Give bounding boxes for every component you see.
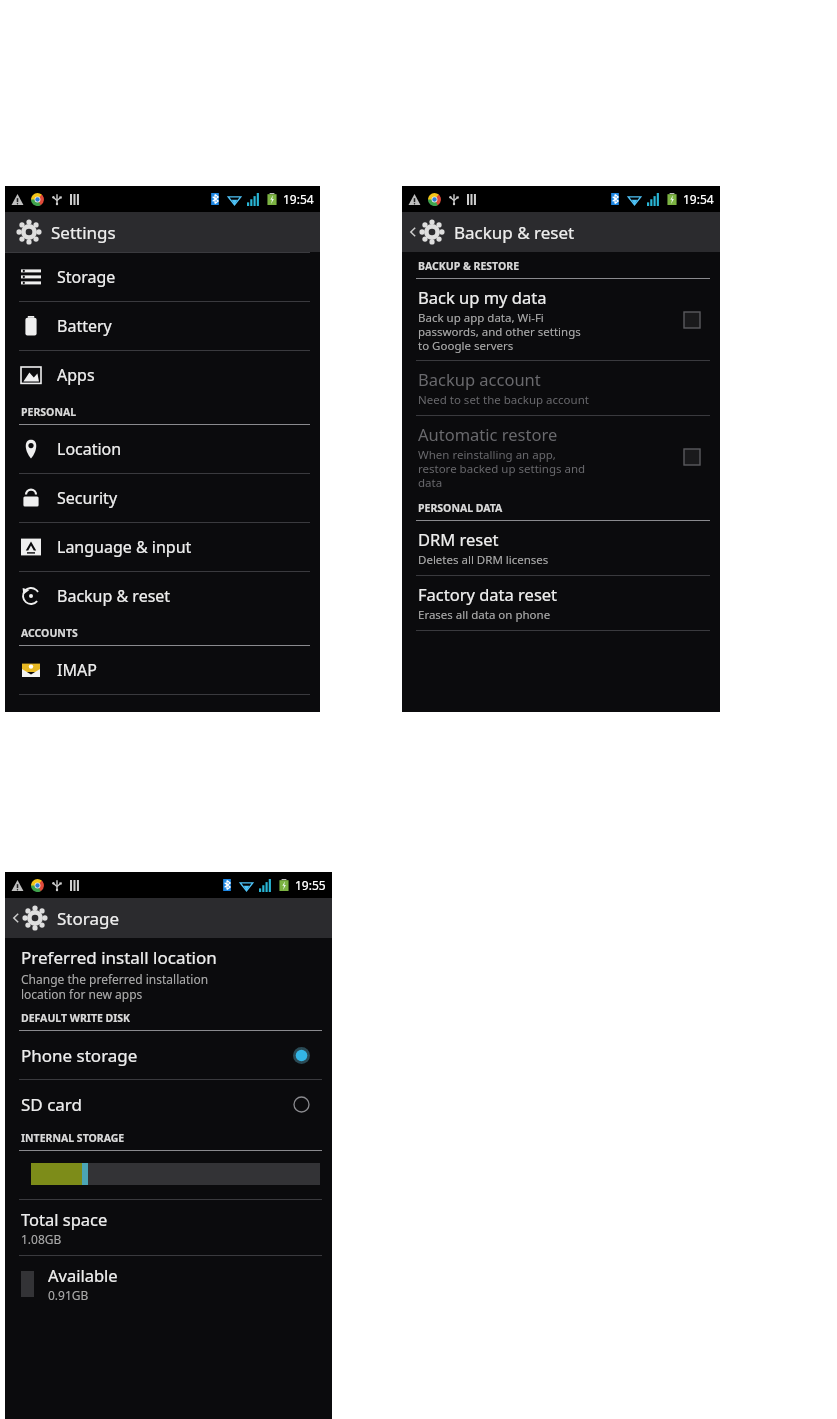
button[interactable]: Language & input (5, 523, 320, 571)
button[interactable]: Back (9, 911, 23, 925)
staticText: Deletes all DRM licenses (418, 552, 549, 568)
button[interactable]: Phone storage (5, 1031, 332, 1079)
button[interactable]: SD card (5, 1080, 332, 1128)
button[interactable]: Back (406, 225, 420, 239)
button[interactable]: Available (5, 1256, 332, 1311)
button[interactable]: Total space (5, 1200, 332, 1255)
button[interactable]: Battery (5, 302, 320, 350)
staticText: PERSONAL DATA (418, 501, 503, 515)
button[interactable]: Back up my data checkbox (684, 312, 700, 328)
staticText: Automatic restore (418, 423, 558, 445)
staticText: 19:55 (295, 877, 326, 893)
button[interactable]: Factory data reset (402, 576, 720, 630)
staticText: Total space (21, 1208, 108, 1230)
staticText: Location (57, 438, 122, 460)
button[interactable]: IMAP (5, 646, 320, 694)
staticText: Apps (57, 364, 95, 386)
staticText: Settings (51, 221, 116, 244)
button[interactable]: DRM reset (402, 521, 720, 575)
staticText: Backup & reset (57, 585, 171, 607)
staticText: ACCOUNTS (21, 626, 78, 640)
staticText: Storage (57, 907, 120, 930)
staticText: PERSONAL (21, 405, 77, 419)
staticText: Factory data reset (418, 583, 558, 605)
button[interactable]: Automatic restore checkbox (684, 449, 700, 465)
staticText: Security (57, 487, 118, 509)
staticText: 1.08GB (21, 1231, 62, 1247)
button[interactable]: Security (5, 474, 320, 522)
staticText: INTERNAL STORAGE (21, 1131, 125, 1145)
staticText: Available (48, 1264, 118, 1286)
staticText: BACKUP & RESTORE (418, 259, 520, 273)
staticText: When reinstalling an app, restore backed… (418, 447, 586, 490)
staticText: Storage (57, 266, 116, 288)
button[interactable]: Automatic restore (402, 416, 720, 497)
staticText: 19:54 (283, 191, 314, 207)
staticText: Backup account (418, 368, 541, 390)
button[interactable]: Back up my data (402, 279, 720, 360)
staticText: Preferred install location (21, 946, 217, 969)
staticText: DRM reset (418, 528, 499, 550)
staticText: Back up my data (418, 286, 547, 308)
staticText: Battery (57, 315, 112, 337)
staticText: Back up app data, Wi-Fi passwords, and o… (418, 310, 581, 353)
button[interactable]: Preferred install location (5, 938, 332, 1008)
staticText: SD card (21, 1093, 293, 1116)
button[interactable]: Storage (5, 253, 320, 301)
staticText: Need to set the backup account (418, 392, 589, 408)
staticText: Erases all data on phone (418, 607, 551, 623)
button[interactable]: Backup & reset (5, 572, 320, 620)
staticText: DEFAULT WRITE DISK (21, 1011, 131, 1025)
staticText: Backup & reset (454, 221, 575, 244)
staticText: 19:54 (683, 191, 714, 207)
staticText: 0.91GB (48, 1287, 89, 1303)
staticText: Change the preferred installation locati… (21, 971, 209, 1002)
staticText: Phone storage (21, 1044, 293, 1067)
button[interactable]: Location (5, 425, 320, 473)
staticText: Language & input (57, 536, 192, 558)
button[interactable]: Backup account (402, 361, 720, 415)
staticText: IMAP (57, 659, 97, 681)
button[interactable]: Apps (5, 351, 320, 399)
